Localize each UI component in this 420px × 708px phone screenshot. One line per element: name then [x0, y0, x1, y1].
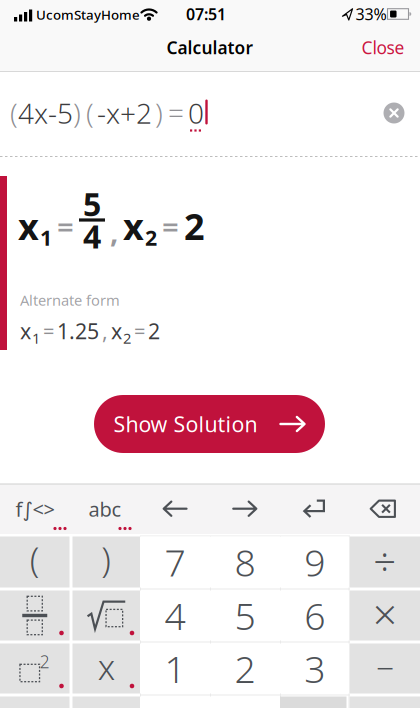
staticText: =	[57, 206, 74, 245]
staticText: Alternate form	[20, 290, 120, 310]
staticText: (	[10, 94, 18, 132]
staticText: x	[18, 202, 39, 250]
button[interactable]: Square root	[72, 590, 140, 640]
button[interactable]: Constants	[0, 696, 69, 708]
button[interactable]: 2	[210, 643, 280, 693]
button[interactable]: Close	[348, 25, 418, 69]
staticText: =	[162, 206, 179, 245]
button[interactable]: 8	[210, 536, 280, 587]
staticText: 5	[83, 183, 101, 225]
button[interactable]: Move cursor left	[143, 484, 207, 534]
staticText: 33%	[355, 3, 386, 25]
button[interactable]: Minus	[349, 643, 420, 693]
staticText: 3	[304, 644, 325, 693]
staticText: UcomStayHome	[36, 6, 140, 23]
button[interactable]: Fraction	[0, 590, 69, 640]
staticText: 0	[188, 94, 204, 132]
staticText: ,	[102, 317, 108, 345]
staticText: 2	[234, 644, 255, 693]
button[interactable]: Show Solution	[94, 395, 325, 453]
button[interactable]: 6	[280, 590, 349, 640]
staticText: (	[86, 94, 94, 132]
button[interactable]: 9	[280, 536, 349, 587]
staticText: 2	[145, 223, 157, 252]
button[interactable]: Equals	[280, 696, 346, 708]
staticText: =	[134, 318, 145, 344]
staticText: (	[30, 536, 40, 582]
button[interactable]: 4	[140, 590, 210, 640]
staticText: 07:51	[186, 3, 226, 25]
staticText: )	[73, 94, 81, 132]
button[interactable]: Delete	[351, 484, 415, 534]
staticText: -	[48, 94, 57, 132]
staticText: Close	[361, 36, 404, 59]
staticText: 4	[164, 591, 185, 640]
button[interactable]: Return	[282, 484, 346, 534]
staticText: f∫<>	[15, 496, 54, 522]
staticText: 8	[234, 537, 255, 587]
staticText: 2	[148, 317, 160, 345]
button[interactable]: Letter keyboard	[70, 484, 140, 534]
staticText: ×	[373, 585, 397, 642]
staticText: 1.25	[57, 317, 99, 345]
staticText: +	[120, 94, 136, 132]
staticText: 5	[57, 94, 73, 132]
staticText: 2	[136, 94, 152, 132]
staticText: 1	[32, 328, 40, 348]
staticText: 2	[40, 650, 50, 673]
button[interactable]: Variable x	[72, 643, 140, 693]
button[interactable]: Multiply	[349, 590, 420, 640]
button[interactable]: Comma	[72, 696, 140, 708]
staticText: 9	[304, 537, 325, 587]
staticText: 7	[164, 537, 185, 587]
staticText: 4x	[18, 94, 48, 132]
staticText: x	[111, 317, 122, 345]
staticText: =	[43, 318, 54, 344]
staticText: Show Solution	[113, 410, 257, 438]
staticText: =	[168, 94, 184, 132]
staticText: x	[123, 202, 144, 250]
button[interactable]: 3	[280, 643, 349, 693]
staticText: )	[101, 536, 111, 582]
staticText: ÷	[373, 534, 396, 587]
button[interactable]: 1	[140, 643, 210, 693]
staticText: )	[155, 94, 163, 132]
staticText: abc	[88, 496, 121, 522]
staticText: 1	[40, 223, 52, 252]
staticText: 6	[304, 591, 325, 640]
staticText: −	[376, 646, 394, 689]
button[interactable]: Close parenthesis	[72, 536, 140, 587]
button[interactable]: 5	[210, 590, 280, 640]
staticText: 1	[164, 644, 185, 693]
staticText: -x	[97, 94, 120, 132]
button[interactable]: Open parenthesis	[0, 536, 69, 587]
button[interactable]: 7	[140, 536, 210, 587]
staticText: 4	[83, 215, 101, 257]
staticText: 2	[184, 202, 205, 250]
staticText: x	[20, 317, 31, 345]
button[interactable]: Square	[0, 643, 69, 693]
staticText: 5	[234, 591, 255, 640]
button[interactable]: Divide	[349, 536, 420, 587]
staticText: 2	[123, 328, 131, 348]
button[interactable]: Move cursor right	[213, 484, 277, 534]
staticText: x	[98, 643, 115, 689]
button[interactable]: Plus	[349, 696, 420, 708]
button[interactable]: Function keyboard	[0, 484, 70, 534]
staticText: Calculator	[166, 36, 253, 59]
button[interactable]: Clear input	[383, 102, 404, 123]
staticText: ,	[110, 211, 118, 250]
